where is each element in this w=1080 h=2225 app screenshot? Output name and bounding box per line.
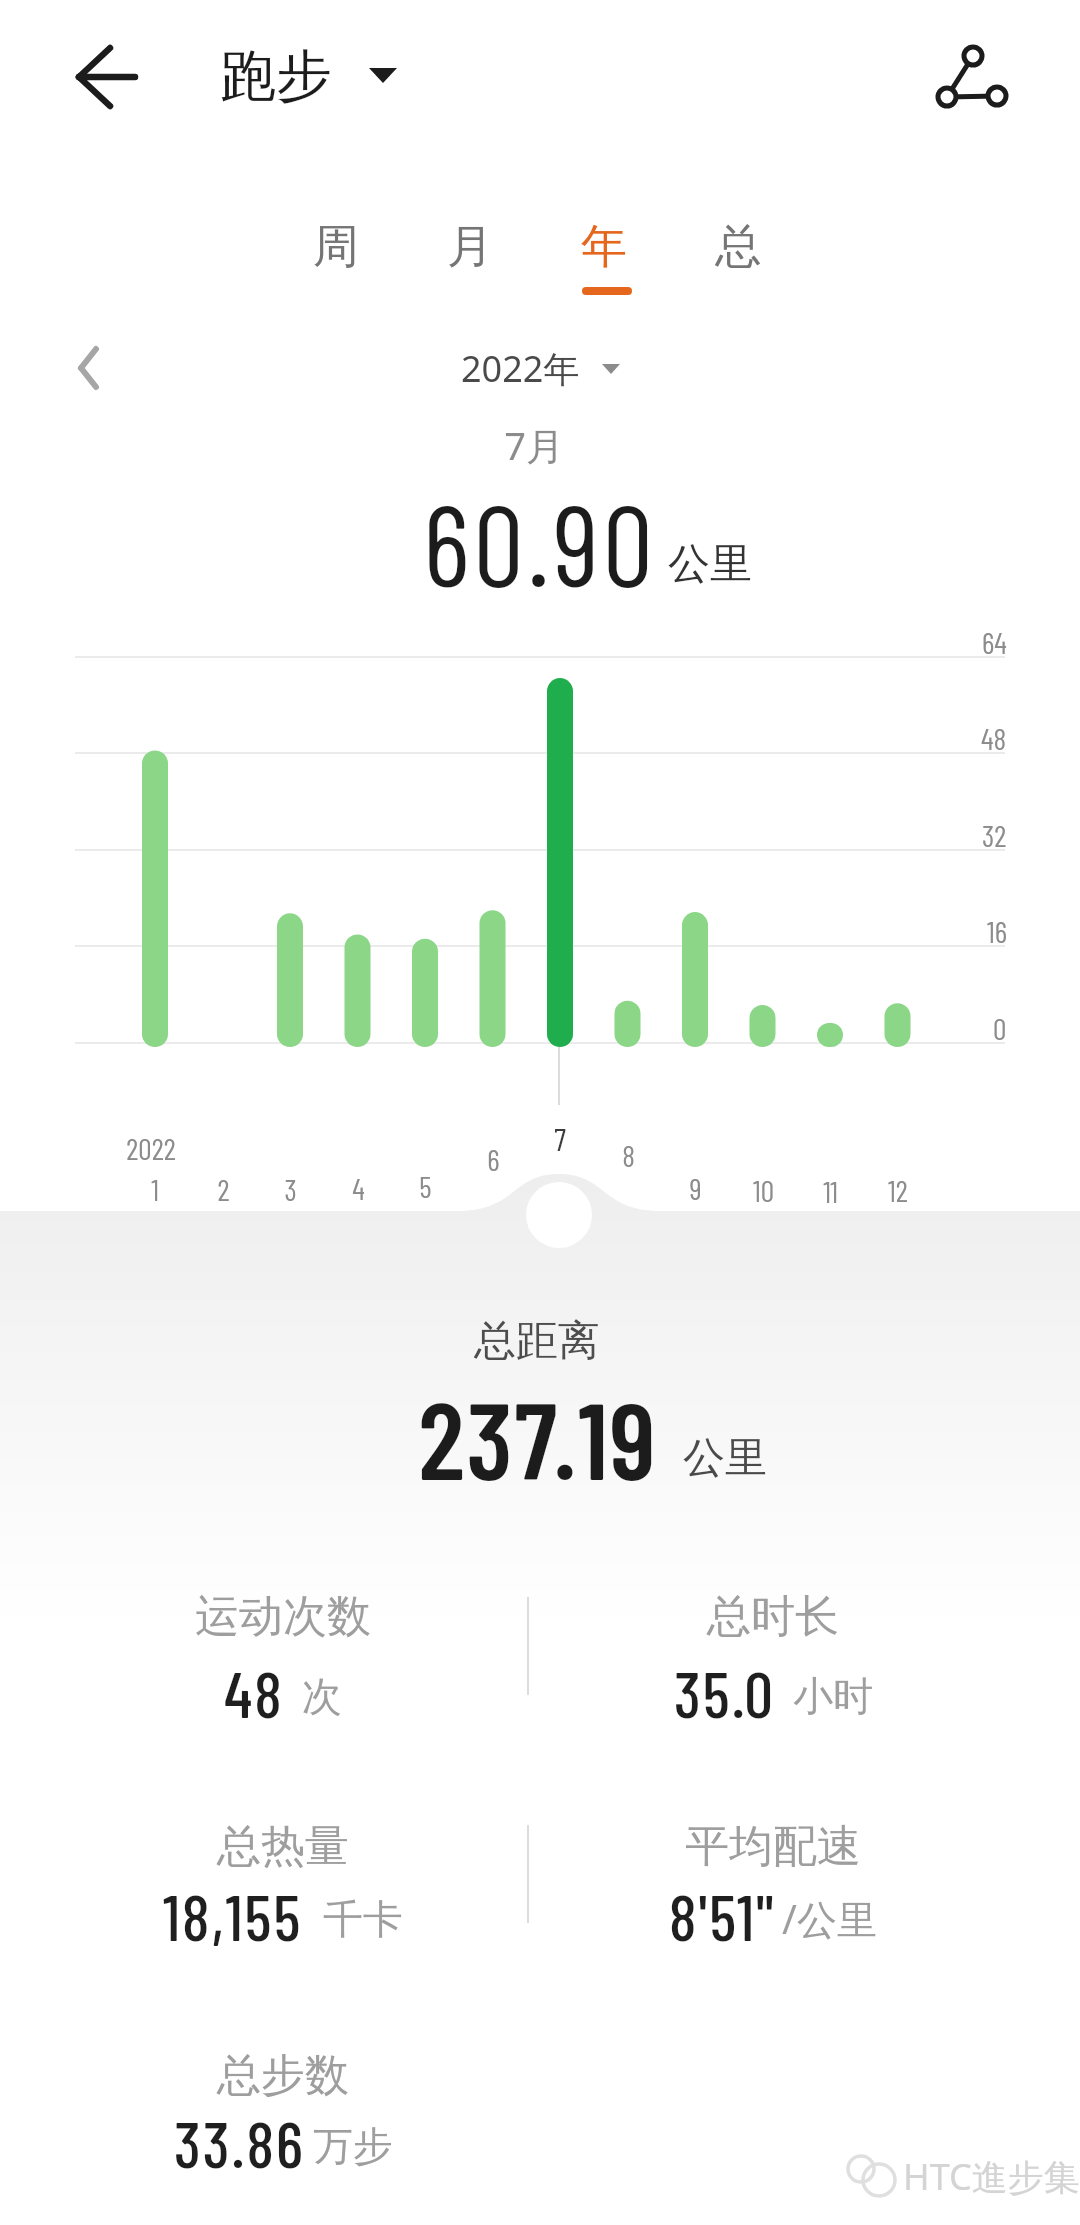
staticText: 跑步	[220, 41, 332, 112]
staticText: 2022	[126, 1130, 176, 1166]
staticText: 8	[622, 1137, 635, 1173]
button[interactable]: 2022年	[380, 328, 700, 408]
staticText: 5	[419, 1168, 432, 1204]
staticText: 1	[151, 1171, 159, 1207]
button[interactable]: 月	[408, 192, 532, 302]
staticText: 总距离	[474, 1315, 600, 1368]
staticText: 3	[284, 1171, 297, 1207]
staticText: 8'51"	[669, 1877, 776, 1954]
staticText: 60.90	[423, 474, 657, 594]
staticText: 12	[888, 1172, 908, 1208]
staticText: 18,155	[163, 1877, 303, 1954]
staticText: 小时	[793, 1671, 873, 1721]
staticText: 33.86	[174, 2104, 305, 2181]
staticText: /公里	[782, 1891, 877, 1946]
staticText: 总步数	[217, 2048, 349, 2103]
button[interactable]: 35.0	[553, 1637, 993, 1747]
staticText: 总热量	[217, 1819, 349, 1874]
staticText: 11	[823, 1173, 838, 1209]
staticText: 公里	[668, 538, 752, 591]
staticText: 月	[447, 218, 493, 276]
staticText: 48	[981, 720, 1007, 756]
staticText: 237.19	[418, 1372, 658, 1492]
button[interactable]: 18,155	[63, 1860, 503, 1970]
staticText: 周	[313, 218, 359, 276]
button[interactable]: 跑步	[220, 30, 398, 122]
staticText: 6	[487, 1141, 500, 1177]
staticText: 年	[581, 218, 627, 276]
staticText: 10	[753, 1172, 774, 1208]
button[interactable]: 48	[63, 1637, 503, 1747]
button[interactable]	[64, 34, 150, 120]
staticText: 35.0	[674, 1654, 775, 1731]
staticText: 万步	[313, 2121, 393, 2171]
staticText: 2022年	[461, 344, 580, 393]
staticText: 次	[302, 1671, 342, 1721]
staticText: 平均配速	[685, 1819, 861, 1874]
staticText: 32	[982, 817, 1007, 853]
staticText: 64	[982, 624, 1007, 660]
button[interactable]	[44, 330, 134, 406]
button[interactable]: 年	[542, 192, 666, 302]
staticText: 48	[224, 1654, 284, 1731]
staticText: 4	[352, 1170, 365, 1206]
staticText: 千卡	[323, 1894, 403, 1944]
staticText: 0	[993, 1010, 1007, 1046]
button[interactable]	[915, 26, 1030, 126]
staticText: 7月	[504, 419, 564, 471]
staticText: 16	[987, 913, 1007, 949]
button[interactable]: 33.86	[63, 2087, 503, 2197]
staticText: HTC進步集	[903, 2152, 1080, 2201]
staticText: 运动次数	[195, 1589, 371, 1644]
staticText: 总时长	[707, 1589, 839, 1644]
button[interactable]: 总	[676, 192, 800, 302]
staticText: 2	[217, 1171, 230, 1207]
button[interactable]: 8'51"	[553, 1860, 993, 1970]
button[interactable]: 周	[274, 192, 398, 302]
staticText: 9	[689, 1170, 702, 1206]
staticText: 总	[715, 218, 761, 276]
staticText: 7	[554, 1119, 566, 1157]
staticText: 公里	[683, 1432, 767, 1485]
